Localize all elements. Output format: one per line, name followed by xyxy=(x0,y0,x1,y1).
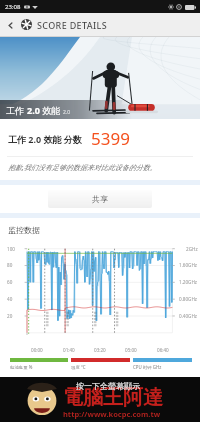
staticText: 06:40 xyxy=(157,347,169,353)
staticText: 00:00 xyxy=(31,347,43,353)
staticText: 01:40 xyxy=(63,347,75,353)
staticText: http://www.kocpc.com.tw xyxy=(63,409,161,419)
staticText: 0.80GHz xyxy=(179,296,198,302)
staticText: 抱歉,我们没有足够的数据来对比此设备的分数。 xyxy=(8,163,157,173)
staticText: 2GHz xyxy=(186,246,198,252)
staticText: 监控数据 xyxy=(8,225,40,235)
staticText: 温度 °C xyxy=(71,364,86,370)
button[interactable]: Back xyxy=(0,15,20,35)
staticText: 23:08 xyxy=(5,3,21,11)
staticText: CPU 时钟 GHz xyxy=(133,364,162,370)
staticText: 1.20GHz xyxy=(179,279,198,285)
staticText: 电池电量 % xyxy=(10,364,33,370)
staticText: 工作 xyxy=(6,104,27,116)
staticText: 工作 2.0 效能 分数 xyxy=(8,133,82,145)
button[interactable]: 共享 xyxy=(48,190,152,208)
staticText: 1.60GHz xyxy=(179,262,198,268)
staticText: 按一下全螢幕顯示 xyxy=(76,381,140,391)
staticText: 5399 xyxy=(91,127,130,150)
staticText: 05:00 xyxy=(125,347,137,353)
staticText: 0.40GHz xyxy=(179,313,198,319)
staticText: 80 xyxy=(7,262,13,268)
staticText: 20 xyxy=(7,313,13,319)
staticText: 40 xyxy=(7,296,13,302)
staticText: 03:20 xyxy=(94,347,106,353)
staticText: 2.0 xyxy=(63,109,71,116)
staticText: 效能 xyxy=(40,104,61,116)
staticText: 60 xyxy=(7,279,13,285)
staticText: 100 xyxy=(7,246,15,252)
staticText: 2.0 xyxy=(27,104,40,116)
staticText: 電腦王阿達 xyxy=(63,385,163,410)
staticText: SCORE DETAILS xyxy=(37,19,107,31)
staticText: 共享 xyxy=(92,194,108,204)
